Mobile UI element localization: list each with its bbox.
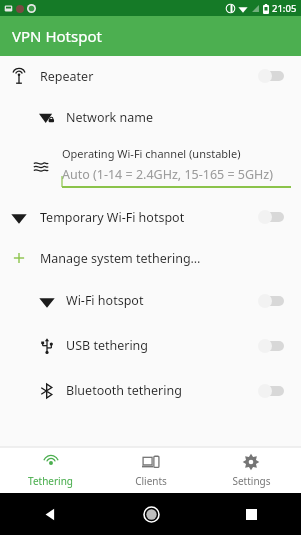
other: Manage system tethering — [11, 250, 27, 266]
other: Home — [144, 507, 159, 522]
staticText: Network name — [66, 109, 154, 126]
staticText: Bluetooth tethering — [66, 382, 182, 399]
button[interactable]: Channel — [0, 138, 301, 196]
button[interactable]: Wi-Fi — [0, 278, 301, 323]
button[interactable]: Tethering — [0, 448, 101, 493]
other: Wi-Fi — [39, 293, 55, 309]
button[interactable]: Clients — [101, 448, 201, 493]
staticText: Repeater — [40, 68, 94, 85]
staticText: Clients — [135, 474, 167, 488]
staticText: Operating Wi-Fi channel (unstable) — [62, 146, 241, 161]
staticText: Temporary Wi-Fi hotspot — [40, 209, 185, 226]
other: Clients — [142, 453, 160, 471]
other: Repeater — [11, 68, 27, 84]
other: Tethering — [42, 453, 60, 471]
button[interactable]: Settings — [201, 448, 301, 493]
button[interactable]: Manage system tethering — [0, 238, 301, 278]
staticText: Auto (1-14 = 2.4GHz, 15-165 = 5GHz) — [62, 166, 273, 183]
other: Settings — [242, 453, 260, 471]
staticText: Wi-Fi hotspot — [66, 292, 144, 309]
other: Network name — [39, 109, 55, 125]
button[interactable]: Bluetooth tethering — [0, 368, 301, 413]
other: Bluetooth tethering — [39, 383, 55, 399]
staticText: 21:05 — [272, 2, 297, 15]
staticText: VPN Hotspot — [12, 26, 102, 46]
button[interactable]: Wi-Fi — [0, 196, 301, 238]
other: USB tethering — [39, 338, 55, 354]
button[interactable]: Repeater — [0, 56, 301, 96]
button[interactable]: Toggle — [257, 381, 287, 401]
button[interactable]: USB tethering — [0, 323, 301, 368]
staticText: Manage system tethering… — [40, 250, 201, 267]
staticText: Settings — [232, 474, 271, 488]
staticText: USB tethering — [66, 337, 149, 354]
button[interactable]: Toggle — [257, 66, 287, 86]
other: Channel — [33, 159, 49, 175]
button[interactable]: Toggle — [257, 291, 287, 311]
button[interactable]: Network name — [0, 96, 301, 138]
other: Wi-Fi — [11, 209, 27, 225]
button[interactable]: Toggle — [257, 207, 287, 227]
button[interactable]: Toggle — [257, 336, 287, 356]
staticText: Tethering — [28, 474, 73, 488]
other: Back — [44, 508, 57, 521]
